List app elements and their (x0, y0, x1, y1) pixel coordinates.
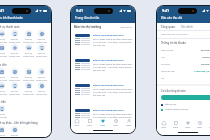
staticText: Dịch vụ thanh toán (36, 90, 47, 96)
staticText: Dịch vụ khác - Liên kết ngân hàng (0, 121, 38, 125)
staticText: Tổng quan (161, 25, 176, 29)
staticText: Menu (113, 124, 119, 127)
staticText: Trung tâm tin tức (75, 16, 100, 20)
staticText: Dịch vụ thanh toán (23, 52, 34, 58)
staticText: 9:41 (162, 8, 170, 13)
staticText: 9:41 (76, 8, 84, 13)
staticText: Menu (87, 124, 93, 127)
button[interactable]: Dịch vụ thanh toán (0, 44, 8, 58)
staticText: 354.325.000 (201, 49, 210, 52)
staticText: Bản tin thị trường ngày 05/01 (93, 34, 124, 37)
staticText: Dịch vụ thanh toán (9, 90, 20, 96)
button[interactable]: Dịch vụ thanh toán (22, 44, 35, 58)
staticText: Tổng tài sản (161, 49, 174, 52)
staticText: Sức mua (161, 63, 170, 66)
button[interactable]: Dịch vụ thanh toán (35, 30, 48, 44)
staticText: Tại VN-Index tăng 8.52 điểm tương ứng 0.… (93, 113, 132, 118)
staticText: Menu (209, 126, 210, 129)
staticText: Cơ cấu tổng tài sản (161, 89, 186, 93)
button[interactable]: Dịch vụ thanh toán (35, 44, 48, 58)
staticText: Dịch vụ thanh toán (36, 76, 47, 82)
staticText: Dịch vụ thanh toán (9, 38, 20, 44)
button[interactable]: Tab 3 (194, 120, 206, 130)
button[interactable]: Dịch vụ thanh toán (0, 68, 8, 82)
button[interactable]: Dịch vụ thanh toán (22, 30, 35, 44)
staticText: Dịch vụ thanh toán (0, 76, 7, 82)
staticText: Bản tin thị trường ngày 05/01 (93, 84, 124, 87)
staticText: Nạp tiền (0, 63, 7, 67)
staticText: Ngày báo cáo: 01/01/2024 (161, 33, 188, 36)
button[interactable]: Tab 2 (182, 120, 194, 130)
staticText: Nợ (161, 77, 165, 80)
button[interactable]: Tab 0 (157, 120, 170, 130)
staticText: Menu (74, 124, 80, 127)
staticText: Dịch vụ thanh toán (0, 52, 7, 58)
button[interactable]: Bản tin thị trường ngày 05/01 (71, 80, 135, 105)
button[interactable]: Tab 3 (109, 118, 122, 128)
staticText: Tiền (0.0%) (165, 103, 177, 106)
staticText: 15.325.000 (202, 56, 210, 59)
staticText: Tại VN-Index tăng 8.52 điểm tương ứng 0.… (93, 63, 132, 72)
button[interactable]: Bản tin thị trường ngày 05/01 (71, 30, 135, 55)
staticText: Báo cáo thu chi (161, 16, 183, 20)
staticText: Dịch vụ thanh toán (36, 52, 47, 58)
staticText: Chứng khoán (100.0%) (165, 108, 189, 111)
staticText: Menu (173, 126, 179, 129)
staticText: 9:41 (0, 8, 5, 13)
staticText: Lãi/lỗ dự kiến (161, 70, 175, 73)
staticText: Menu (197, 126, 203, 129)
button[interactable]: Dịch vụ thanh toán (8, 30, 21, 44)
staticText: Dịch vụ thanh toán (9, 76, 20, 82)
staticText: 14.500.000 (+2.3%) (194, 70, 210, 73)
button[interactable]: Dịch vụ thanh toán (8, 68, 21, 82)
staticText: 228.000.000 (201, 63, 210, 66)
staticText: NAV (161, 56, 166, 59)
button[interactable]: Tab 2 (96, 118, 109, 128)
staticText: Tại VN-Index tăng 8.52 điểm tương ứng 0.… (93, 38, 132, 47)
button[interactable]: Dịch vụ thanh toán (22, 82, 35, 96)
button[interactable]: Dịch vụ thanh toán (8, 44, 21, 58)
button[interactable]: Dịch vụ thanh toán (0, 82, 8, 96)
button[interactable]: Dịch vụ thanh toán (8, 82, 21, 96)
button[interactable]: Tab 0 (71, 118, 83, 128)
staticText: Bản tin thị trường (74, 25, 102, 29)
staticText: Dịch vụ thanh toán (9, 52, 20, 58)
staticText: Thông tin tài khoản (161, 41, 187, 45)
staticText: Dịch vụ thanh toán (23, 76, 34, 82)
staticText: Bản tin thị trường ngày 05/01 (93, 109, 124, 112)
button[interactable]: Tab 1 (83, 118, 96, 128)
button[interactable]: Dịch vụ thanh toán (35, 82, 48, 96)
button[interactable]: Dịch vụ thanh toán (0, 30, 8, 44)
staticText: Dịch vụ thanh toán (0, 134, 7, 137)
staticText: Dịch vụ thanh toán (0, 90, 7, 96)
staticText: Tại VN-Index tăng 8.52 điểm tương ứng 0.… (93, 88, 132, 97)
staticText: Dịch vụ thanh toán (0, 25, 20, 29)
staticText: Menu (100, 124, 106, 127)
staticText: Menu (161, 126, 167, 129)
staticText: Rút tiền (0, 100, 6, 104)
button[interactable]: Dịch vụ thanh toán (8, 126, 21, 137)
button[interactable]: Dịch vụ thanh toán (0, 105, 8, 119)
staticText: Tài chính (181, 25, 193, 29)
button[interactable]: Bản tin thị trường ngày 05/01 (71, 55, 135, 80)
button[interactable]: Dịch vụ thanh toán (0, 126, 8, 137)
button[interactable]: Tab 4 (122, 118, 135, 128)
button[interactable]: Bản tin thị trường ngày 05/01 (71, 105, 135, 118)
staticText: Xem tất cả (120, 25, 132, 28)
staticText: Dịch vụ thanh toán (0, 38, 7, 44)
staticText: Dịch vụ thanh toán (23, 90, 34, 96)
staticText: Dịch vụ thanh toán (23, 38, 34, 44)
staticText: Tiện ích thanh toán (0, 16, 23, 20)
staticText: Menu (126, 124, 132, 127)
button[interactable]: Dịch vụ thanh toán (22, 68, 35, 82)
button[interactable]: Tab 4 (206, 120, 210, 130)
staticText: Bản tin thị trường ngày 05/01 (93, 59, 124, 62)
staticText: Dịch vụ thanh toán (9, 134, 20, 137)
button[interactable]: Tab 1 (170, 120, 182, 130)
staticText: Dịch vụ thanh toán (0, 113, 7, 119)
staticText: Menu (185, 126, 191, 129)
staticText: Dịch vụ thanh toán (36, 38, 47, 44)
button[interactable]: Dịch vụ thanh toán (35, 68, 48, 82)
